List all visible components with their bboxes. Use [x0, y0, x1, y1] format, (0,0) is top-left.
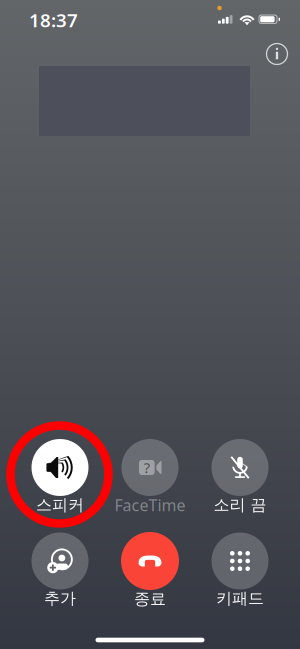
button[interactable]: 스피커: [15, 439, 105, 514]
button[interactable]: 종료: [105, 532, 195, 607]
staticText: FaceTime: [114, 494, 185, 516]
button[interactable]: 키패드: [195, 532, 285, 607]
staticText: ?: [144, 458, 150, 477]
button[interactable]: Call information: [257, 34, 297, 74]
staticText: 스피커: [36, 495, 84, 515]
staticText: 종료: [134, 589, 166, 609]
staticText: 키패드: [216, 589, 264, 608]
staticText: 추가: [44, 589, 76, 608]
button[interactable]: 소리 끔: [195, 439, 285, 514]
button[interactable]: ?: [105, 439, 195, 514]
button[interactable]: 추가: [15, 532, 105, 607]
staticText: 소리 끔: [213, 495, 266, 515]
staticText: 18:37: [29, 8, 78, 32]
